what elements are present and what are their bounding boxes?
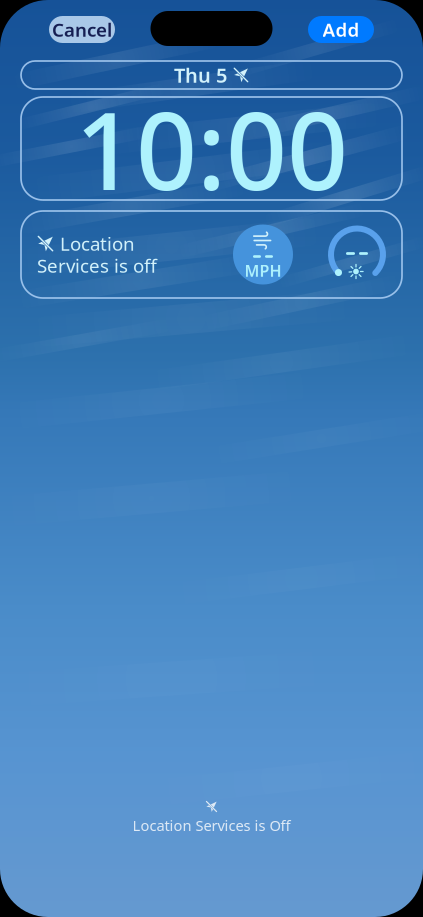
staticText: Add	[322, 17, 359, 42]
staticText: Services is off	[37, 253, 157, 278]
button[interactable]: Thu 5	[21, 61, 402, 89]
button[interactable]: Cancel	[49, 16, 115, 43]
button[interactable]: Add	[308, 16, 374, 43]
staticText: 10:00	[75, 78, 348, 219]
staticText: Thu 5	[174, 62, 227, 88]
staticText: Cancel	[52, 17, 112, 42]
staticText: MPH	[244, 260, 281, 281]
button[interactable]: UV index	[325, 222, 389, 286]
button[interactable]: Location	[21, 231, 233, 278]
staticText: Location Services is Off	[132, 815, 290, 835]
button[interactable]: 10:00	[21, 97, 402, 200]
staticText: Location	[60, 231, 135, 256]
button[interactable]: Wind speed	[233, 224, 293, 284]
